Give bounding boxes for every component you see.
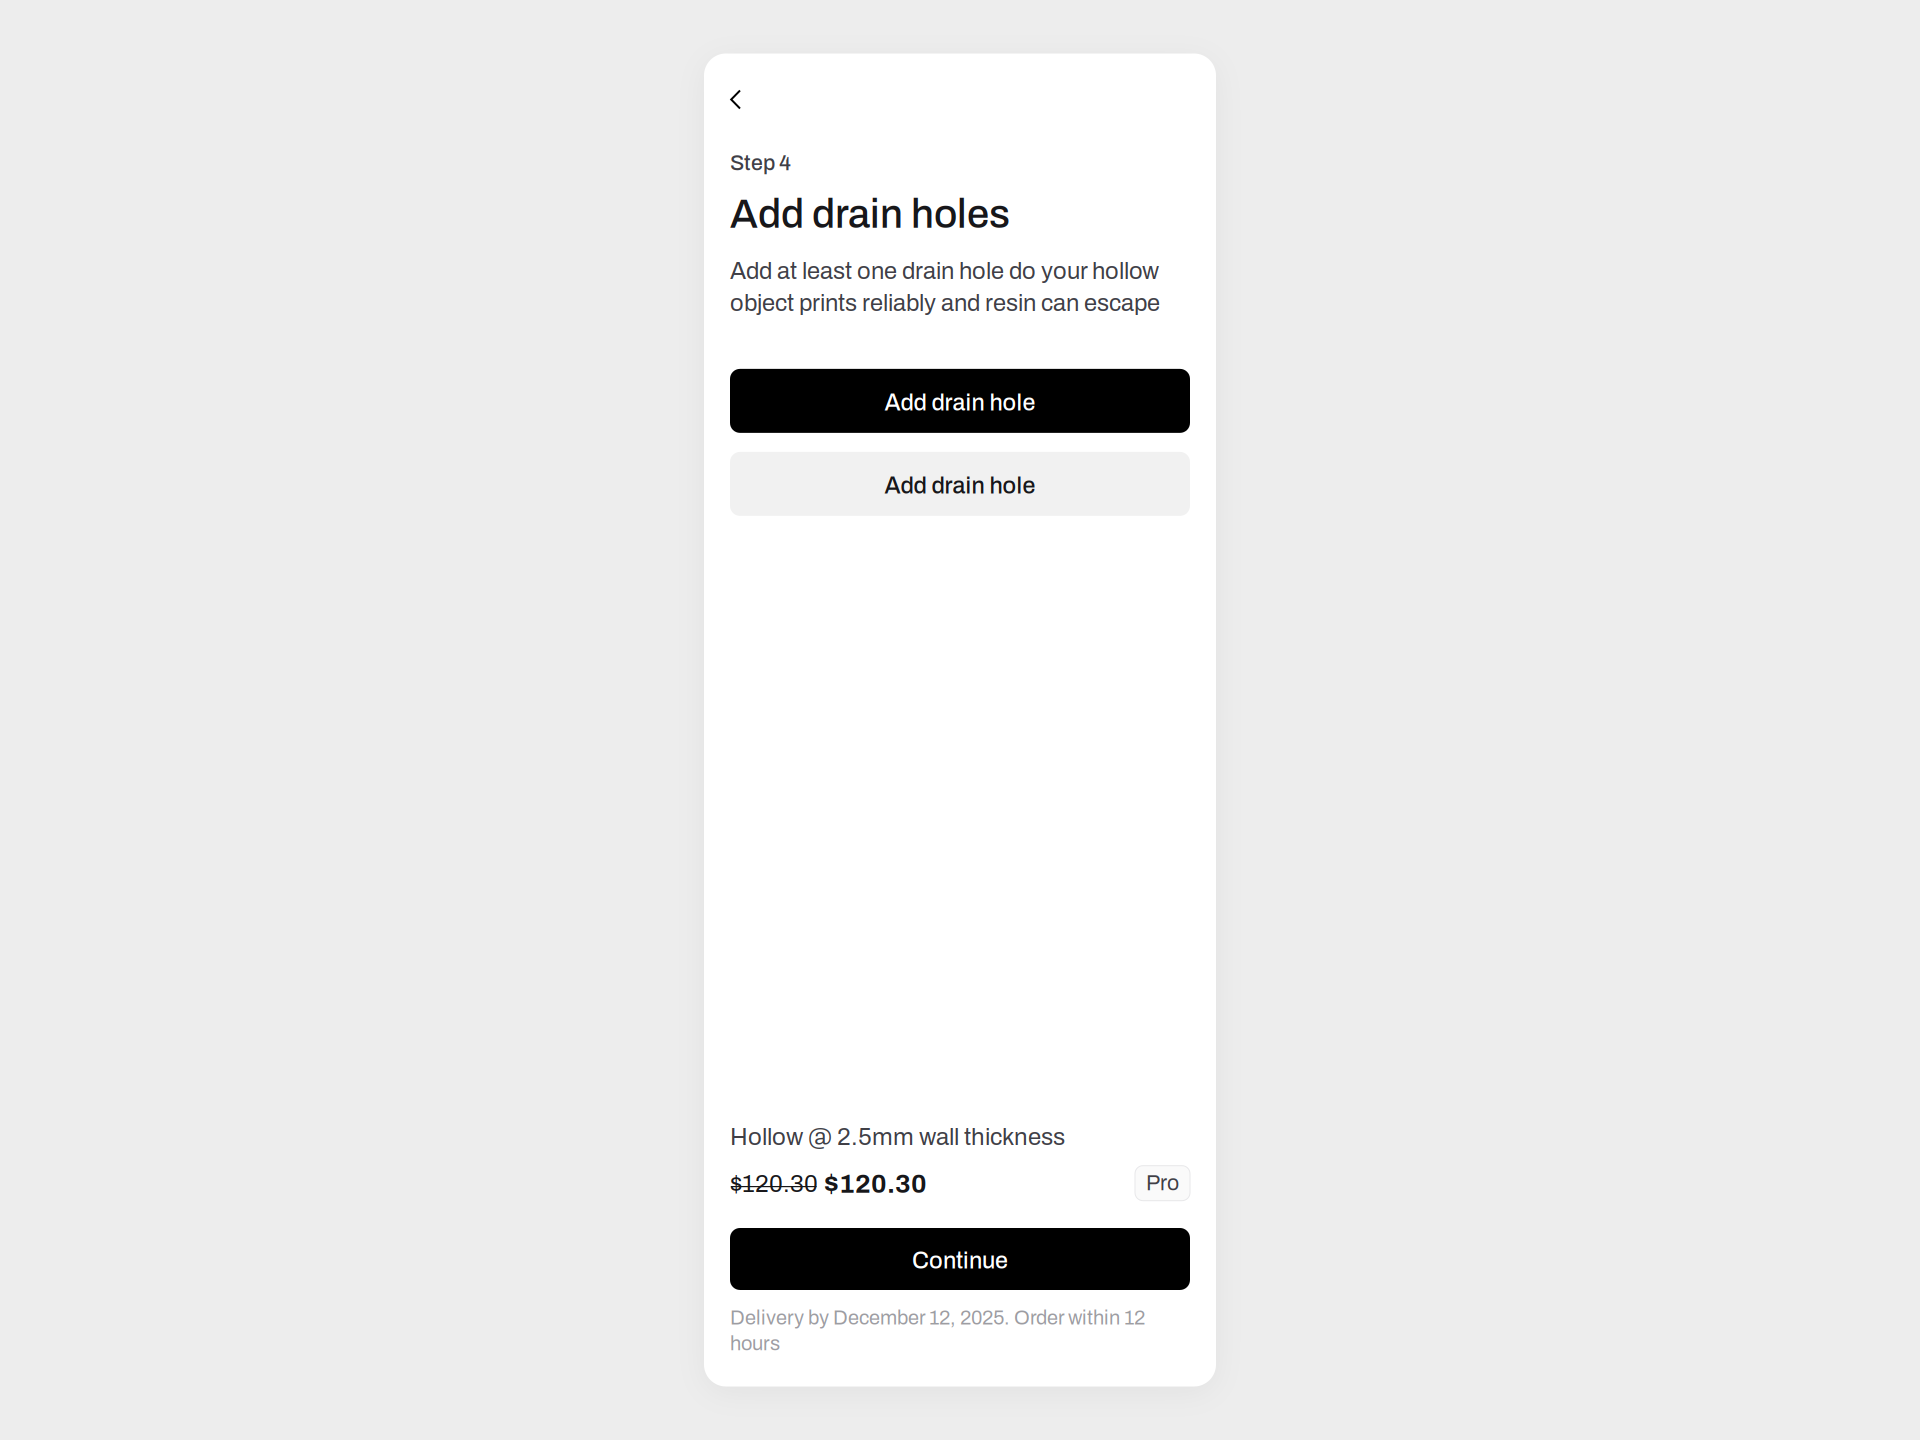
button[interactable]: Add drain hole xyxy=(730,452,1190,516)
button[interactable]: Continue xyxy=(730,1228,1190,1290)
staticText: Add at least one drain hole do your holl… xyxy=(730,258,1160,316)
staticText: Add drain hole xyxy=(884,390,1035,415)
staticText: Delivery by December 12, 2025. Order wit… xyxy=(730,1307,1145,1354)
staticText: Pro xyxy=(1146,1172,1179,1195)
staticText: Continue xyxy=(912,1248,1008,1273)
staticText: $120.30 xyxy=(730,1171,818,1197)
staticText: Add drain hole xyxy=(884,473,1035,498)
button[interactable]: Back xyxy=(730,82,764,116)
staticText: Hollow @ 2.5mm wall thickness xyxy=(730,1124,1065,1150)
button[interactable]: Add drain hole xyxy=(730,369,1190,433)
staticText: Step 4 xyxy=(730,151,791,175)
staticText: Add drain holes xyxy=(730,193,1010,236)
staticText: $120.30 xyxy=(824,1170,927,1198)
button[interactable]: Pro xyxy=(1135,1166,1190,1201)
